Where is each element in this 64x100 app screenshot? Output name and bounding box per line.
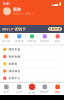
- button[interactable]: 会场: [13, 85, 26, 93]
- staticText: ›: [60, 75, 61, 81]
- button[interactable]: 我的足迹: [0, 46, 64, 53]
- staticText: ▂▃ ▮: [52, 1, 61, 6]
- staticText: 我的足迹: [8, 48, 20, 51]
- button[interactable]: 首页: [0, 85, 13, 93]
- staticText: 购物车: [40, 90, 49, 93]
- button[interactable]: 我的收藏: [0, 53, 64, 60]
- staticText: 待付款: [2, 39, 11, 43]
- staticText: 昵称: [13, 7, 21, 12]
- staticText: 查看个人主页 >: [13, 12, 34, 15]
- staticText: 会场: [16, 90, 22, 93]
- button[interactable]: 购物车: [38, 85, 51, 93]
- staticText: 首页: [3, 90, 9, 93]
- staticText: 设置中心: [8, 77, 20, 80]
- button[interactable]: 待付款: [0, 34, 13, 43]
- staticText: 优惠券: [8, 62, 17, 65]
- staticText: 待评价: [40, 39, 49, 43]
- staticText: ›: [60, 54, 61, 59]
- button[interactable]: 直播: [26, 84, 38, 94]
- button[interactable]: 待收货: [26, 34, 38, 43]
- staticText: 88VIP 省钱卡: [2, 26, 26, 32]
- staticText: 立即开通: [49, 27, 61, 31]
- button[interactable]: 设置中心: [0, 75, 64, 82]
- staticText: 我的钱包: [8, 69, 20, 73]
- staticText: 我的: [55, 90, 61, 93]
- button[interactable]: 待发货: [13, 34, 26, 43]
- button[interactable]: 我的: [51, 85, 64, 93]
- staticText: 待收货: [27, 39, 36, 43]
- button[interactable]: 待评价: [38, 34, 51, 43]
- staticText: 9:41: [3, 1, 10, 6]
- button[interactable]: 我的钱包: [0, 68, 64, 75]
- staticText: 我的收藏: [8, 55, 20, 58]
- button[interactable]: 优惠券: [0, 60, 64, 68]
- staticText: 待发货: [15, 39, 24, 43]
- staticText: ›: [60, 68, 61, 74]
- button[interactable]: 退款: [51, 34, 64, 43]
- staticText: ›: [60, 47, 61, 52]
- staticText: 退款: [55, 39, 61, 43]
- staticText: 直播: [29, 91, 35, 94]
- staticText: ›: [60, 61, 61, 66]
